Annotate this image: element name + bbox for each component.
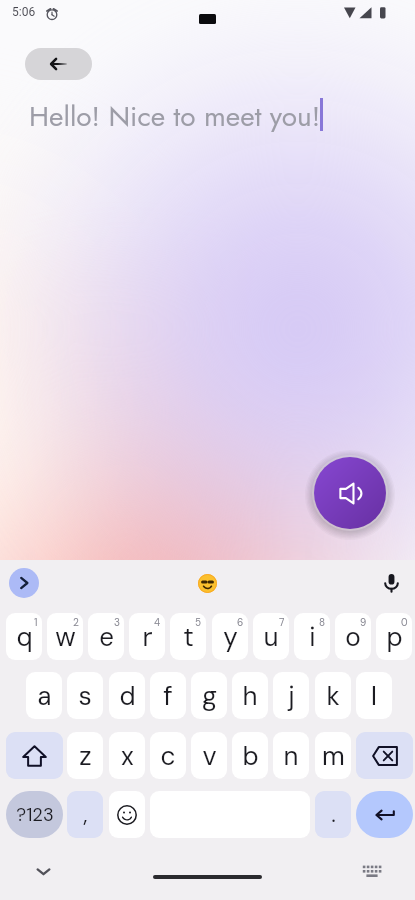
other: Enter xyxy=(375,810,395,820)
button[interactable]: l xyxy=(356,672,392,719)
button[interactable]: y xyxy=(212,613,248,660)
staticText: x xyxy=(121,739,134,773)
button[interactable]: p xyxy=(376,613,412,660)
staticText: j xyxy=(288,679,295,713)
staticText: h xyxy=(242,679,258,713)
staticText: u xyxy=(263,620,279,654)
staticText: w xyxy=(55,620,76,654)
button[interactable]: More suggestions xyxy=(9,568,39,598)
staticText: f xyxy=(163,679,173,713)
button[interactable]: n xyxy=(273,732,309,779)
other: Shift xyxy=(22,745,47,767)
staticText: l xyxy=(371,679,377,713)
button[interactable]: x xyxy=(109,732,145,779)
other: Emoji xyxy=(117,805,137,825)
staticText: 2 xyxy=(73,616,79,629)
button[interactable]: Voice input xyxy=(381,572,402,593)
staticText: o xyxy=(345,620,361,654)
staticText: t xyxy=(183,620,194,654)
button[interactable]: z xyxy=(67,732,103,779)
staticText: 7 xyxy=(279,616,285,629)
staticText: e xyxy=(99,620,114,654)
button[interactable]: g xyxy=(191,672,227,719)
staticText: 0 xyxy=(401,616,408,629)
staticText: i xyxy=(309,620,316,654)
button[interactable]: o xyxy=(335,613,371,660)
button[interactable]: k xyxy=(315,672,351,719)
staticText: ?123 xyxy=(16,803,54,826)
button[interactable]: Hide keyboard xyxy=(33,861,54,882)
button[interactable]: ?123 xyxy=(6,791,63,838)
button[interactable]: t xyxy=(170,613,206,660)
staticText: , xyxy=(83,800,88,829)
staticText: b xyxy=(242,739,259,773)
button[interactable]: c xyxy=(150,732,186,779)
staticText: 6 xyxy=(237,616,244,629)
staticText: 9 xyxy=(360,616,367,629)
button[interactable]: j xyxy=(273,672,309,719)
button[interactable]: b xyxy=(232,732,268,779)
staticText: k xyxy=(326,679,340,713)
staticText: 3 xyxy=(114,616,120,629)
button[interactable]: , xyxy=(67,791,103,838)
staticText: 5 xyxy=(195,616,202,629)
button[interactable]: d xyxy=(109,672,145,719)
staticText: s xyxy=(78,679,92,713)
staticText: 4 xyxy=(154,616,161,629)
button[interactable]: Back xyxy=(25,48,92,80)
button[interactable]: a xyxy=(26,672,62,719)
staticText: Hello! Nice to meet you! xyxy=(29,96,321,136)
button[interactable]: q xyxy=(6,613,42,660)
button[interactable]: Shift xyxy=(6,732,63,779)
staticText: a xyxy=(37,679,52,713)
button[interactable]: m xyxy=(315,732,351,779)
staticText: z xyxy=(79,739,92,773)
button[interactable]: r xyxy=(129,613,165,660)
button[interactable]: . xyxy=(315,791,351,838)
staticText: 5:06 xyxy=(12,5,36,19)
button[interactable]: Switch keyboard xyxy=(362,862,382,882)
button[interactable]: Play audio xyxy=(314,457,386,529)
staticText: q xyxy=(16,620,33,654)
button[interactable]: e xyxy=(88,613,124,660)
staticText: 8 xyxy=(319,616,326,629)
button[interactable]: Emoji suggestion xyxy=(198,574,217,593)
button[interactable]: i xyxy=(294,613,330,660)
staticText: c xyxy=(160,739,176,773)
staticText: 1 xyxy=(34,616,38,629)
button[interactable]: f xyxy=(150,672,186,719)
staticText: d xyxy=(119,679,136,713)
button[interactable]: w xyxy=(47,613,83,660)
staticText: v xyxy=(202,739,217,773)
staticText: n xyxy=(283,739,299,773)
button[interactable]: Backspace xyxy=(356,732,413,779)
staticText: y xyxy=(223,620,238,654)
button[interactable]: s xyxy=(67,672,103,719)
staticText: p xyxy=(386,620,403,654)
staticText: g xyxy=(202,679,217,713)
button[interactable]: h xyxy=(232,672,268,719)
staticText: . xyxy=(331,800,336,829)
button[interactable]: u xyxy=(253,613,289,660)
button[interactable]: Enter xyxy=(356,791,413,838)
staticText: r xyxy=(142,620,153,654)
button[interactable]: Emoji xyxy=(109,791,145,838)
other: Backspace xyxy=(372,746,398,766)
staticText: m xyxy=(322,739,345,773)
button[interactable]: v xyxy=(191,732,227,779)
